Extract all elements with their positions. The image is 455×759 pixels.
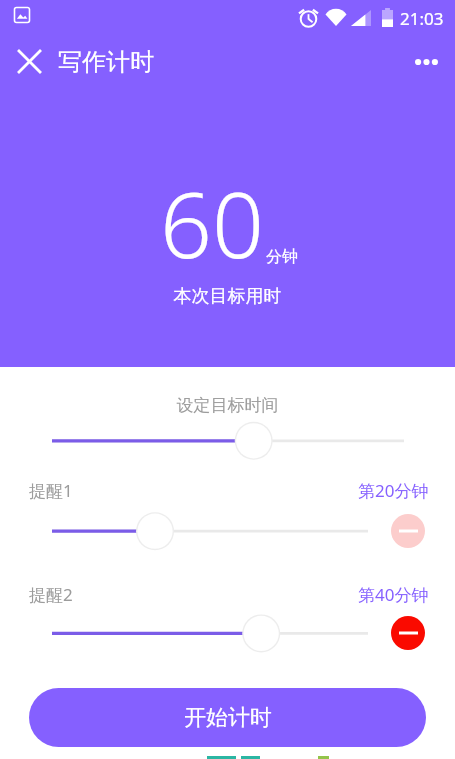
button[interactable]: Reminder 1 slider bbox=[34, 511, 386, 551]
staticText: 第40分钟 bbox=[358, 583, 429, 606]
staticText: 写作计时 bbox=[58, 47, 154, 77]
staticText: 60 bbox=[160, 161, 264, 285]
button[interactable]: 开始计时 bbox=[29, 688, 426, 747]
button[interactable]: Remove reminder 2 bbox=[391, 616, 425, 650]
staticText: 分钟 bbox=[266, 247, 298, 267]
other: Screenshot saved bbox=[14, 7, 30, 23]
staticText: 提醒1 bbox=[29, 479, 73, 502]
button[interactable]: Target duration slider bbox=[34, 421, 422, 461]
staticText: 本次目标用时 bbox=[0, 285, 455, 308]
staticText: 第20分钟 bbox=[358, 479, 429, 502]
button[interactable]: Reminder 2 slider bbox=[34, 613, 386, 653]
staticText: 开始计时 bbox=[184, 704, 272, 732]
staticText: 设定目标时间 bbox=[0, 395, 455, 416]
button[interactable]: Remove reminder 1 bbox=[391, 514, 425, 548]
button[interactable]: More options bbox=[404, 39, 449, 84]
staticText: 提醒2 bbox=[29, 583, 73, 606]
staticText: 21:03 bbox=[400, 7, 444, 30]
button[interactable]: Close bbox=[7, 39, 52, 84]
